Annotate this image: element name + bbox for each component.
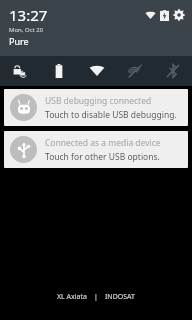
button[interactable]: Battery — [39, 56, 78, 86]
button[interactable]: Bluetooth — [154, 56, 192, 86]
staticText: 13:27 — [9, 5, 48, 25]
staticText: XL Axiata — [57, 292, 87, 302]
button[interactable]: Settings — [172, 8, 186, 22]
button[interactable]: Rotation lock — [0, 56, 39, 86]
staticText: INDOSAT — [105, 292, 135, 302]
button[interactable]: Pure — [9, 35, 29, 47]
staticText: USB debugging connected — [45, 95, 152, 107]
button[interactable]: USB debugging connected — [4, 89, 188, 126]
other: Battery charging — [160, 10, 169, 21]
staticText: | — [94, 292, 98, 302]
staticText: Mon, Oct 20 — [9, 26, 44, 34]
button[interactable]: Cast screen — [116, 56, 154, 86]
other: Wi-Fi signal — [145, 10, 156, 21]
staticText: Connected as a media device — [45, 137, 161, 149]
staticText: Touch for other USB options. — [45, 151, 160, 163]
button[interactable]: Wi-Fi — [78, 56, 116, 86]
button[interactable]: Connected as a media device — [4, 131, 188, 168]
staticText: Touch to disable USB debugging. — [45, 109, 177, 121]
